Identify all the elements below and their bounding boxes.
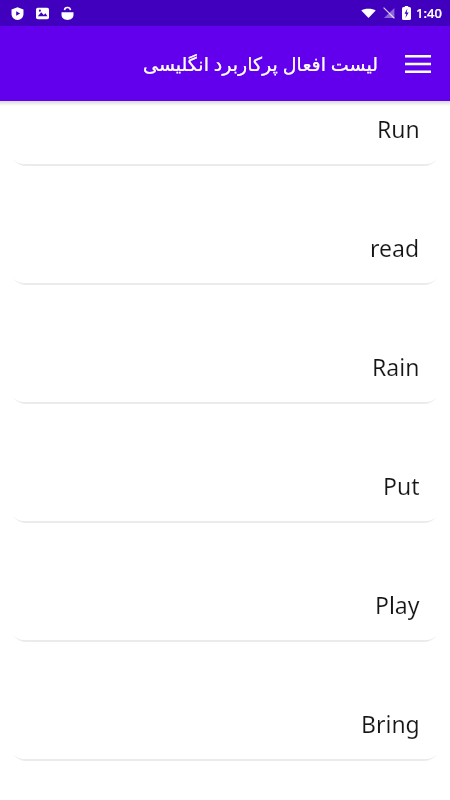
staticText: read	[370, 232, 420, 263]
staticText: Bring	[361, 708, 420, 739]
staticText: Rain	[372, 351, 420, 382]
staticText: Play	[375, 589, 420, 620]
staticText: Run	[377, 113, 420, 144]
button[interactable]: Put	[8, 449, 442, 521]
button[interactable]: Bring	[8, 687, 442, 759]
button[interactable]: Play	[8, 568, 442, 640]
button[interactable]: Run	[8, 106, 442, 164]
button[interactable]: Rain	[8, 330, 442, 402]
button[interactable]: read	[8, 211, 442, 283]
staticText: 1:40	[416, 4, 442, 22]
button[interactable]: Open navigation menu	[394, 40, 442, 88]
staticText: لیست افعال پرکاربرد انگلیسی	[22, 51, 378, 77]
staticText: Put	[383, 470, 420, 501]
